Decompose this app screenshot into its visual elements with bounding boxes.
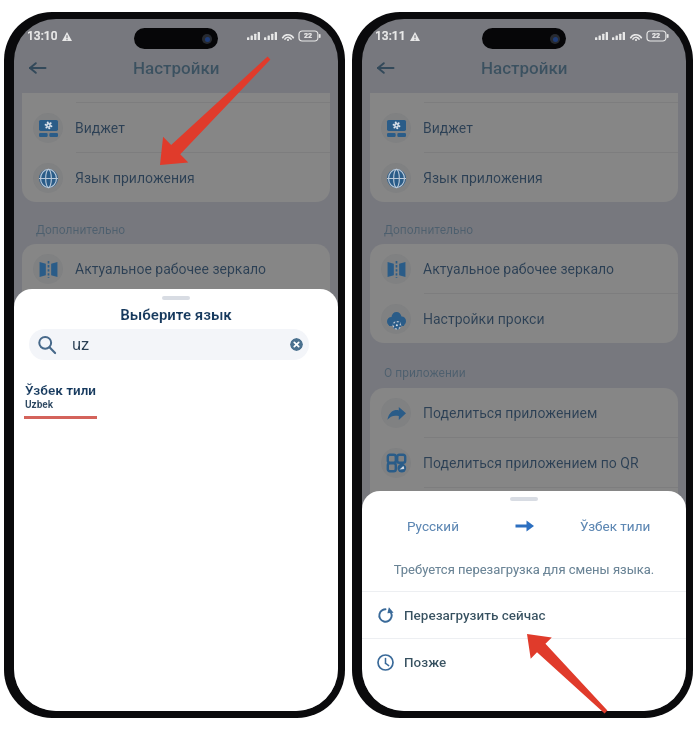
staticText: Uzbek bbox=[25, 399, 54, 411]
button[interactable]: Ўзбек тили bbox=[14, 382, 338, 419]
button[interactable]: Русский bbox=[407, 518, 459, 534]
staticText: Дополнительно bbox=[36, 223, 126, 237]
staticText: Поделиться приложением bbox=[75, 405, 250, 421]
staticText: uz bbox=[72, 335, 90, 354]
button[interactable]: Ўзбек тили bbox=[580, 518, 651, 534]
staticText: Язык приложения bbox=[75, 170, 195, 186]
button[interactable]: Язык приложения bbox=[370, 153, 678, 202]
staticText: Настройки bbox=[133, 58, 220, 78]
staticText: Актуальное рабочее зеркало bbox=[423, 261, 615, 277]
staticText: 22 bbox=[304, 32, 313, 40]
button[interactable]: Виджет bbox=[370, 103, 678, 152]
staticText: Настройки прокси bbox=[423, 311, 545, 327]
staticText: Ўзбек тили bbox=[25, 382, 96, 398]
button[interactable]: Язык приложения bbox=[22, 153, 330, 202]
staticText: Поделиться приложением по QR bbox=[423, 455, 639, 471]
button[interactable] bbox=[370, 488, 678, 537]
staticText: Позже bbox=[404, 654, 447, 670]
button[interactable]: Позже bbox=[362, 639, 686, 685]
staticText: О приложении bbox=[384, 366, 466, 380]
button[interactable]: Перезагрузить сейчас bbox=[362, 592, 686, 638]
button[interactable]: Поделиться приложением bbox=[370, 388, 678, 437]
staticText: 13:10 bbox=[27, 29, 58, 43]
staticText: Настройки bbox=[481, 58, 568, 78]
staticText: 22 bbox=[652, 32, 661, 40]
button[interactable]: Настройки прокси bbox=[370, 294, 678, 343]
staticText: 13:11 bbox=[375, 29, 406, 43]
button[interactable]: Back bbox=[20, 51, 54, 84]
button[interactable]: Актуальное рабочее зеркало bbox=[22, 244, 330, 293]
button[interactable]: uz bbox=[29, 329, 309, 360]
staticText: Настройки прокси bbox=[75, 311, 197, 327]
staticText: Выберите язык bbox=[14, 306, 338, 324]
button[interactable]: Виджет bbox=[22, 103, 330, 152]
staticText: Актуальное рабочее зеркало bbox=[75, 261, 267, 277]
button[interactable]: Поделиться приложением по QR bbox=[370, 438, 678, 487]
button[interactable]: Настройки прокси bbox=[22, 294, 330, 343]
staticText: Требуется перезагрузка для смены языка. bbox=[362, 562, 686, 577]
staticText: Виджет bbox=[423, 120, 473, 136]
staticText: Язык приложения bbox=[423, 170, 543, 186]
button[interactable]: Back bbox=[368, 51, 402, 84]
button[interactable]: Clear search bbox=[290, 338, 303, 351]
button[interactable]: Поделиться приложением bbox=[22, 388, 330, 437]
button[interactable]: Актуальное рабочее зеркало bbox=[370, 244, 678, 293]
staticText: Поделиться приложением bbox=[423, 405, 598, 421]
staticText: Дополнительно bbox=[384, 223, 474, 237]
staticText: Перезагрузить сейчас bbox=[404, 607, 546, 623]
staticText: Виджет bbox=[75, 120, 125, 136]
